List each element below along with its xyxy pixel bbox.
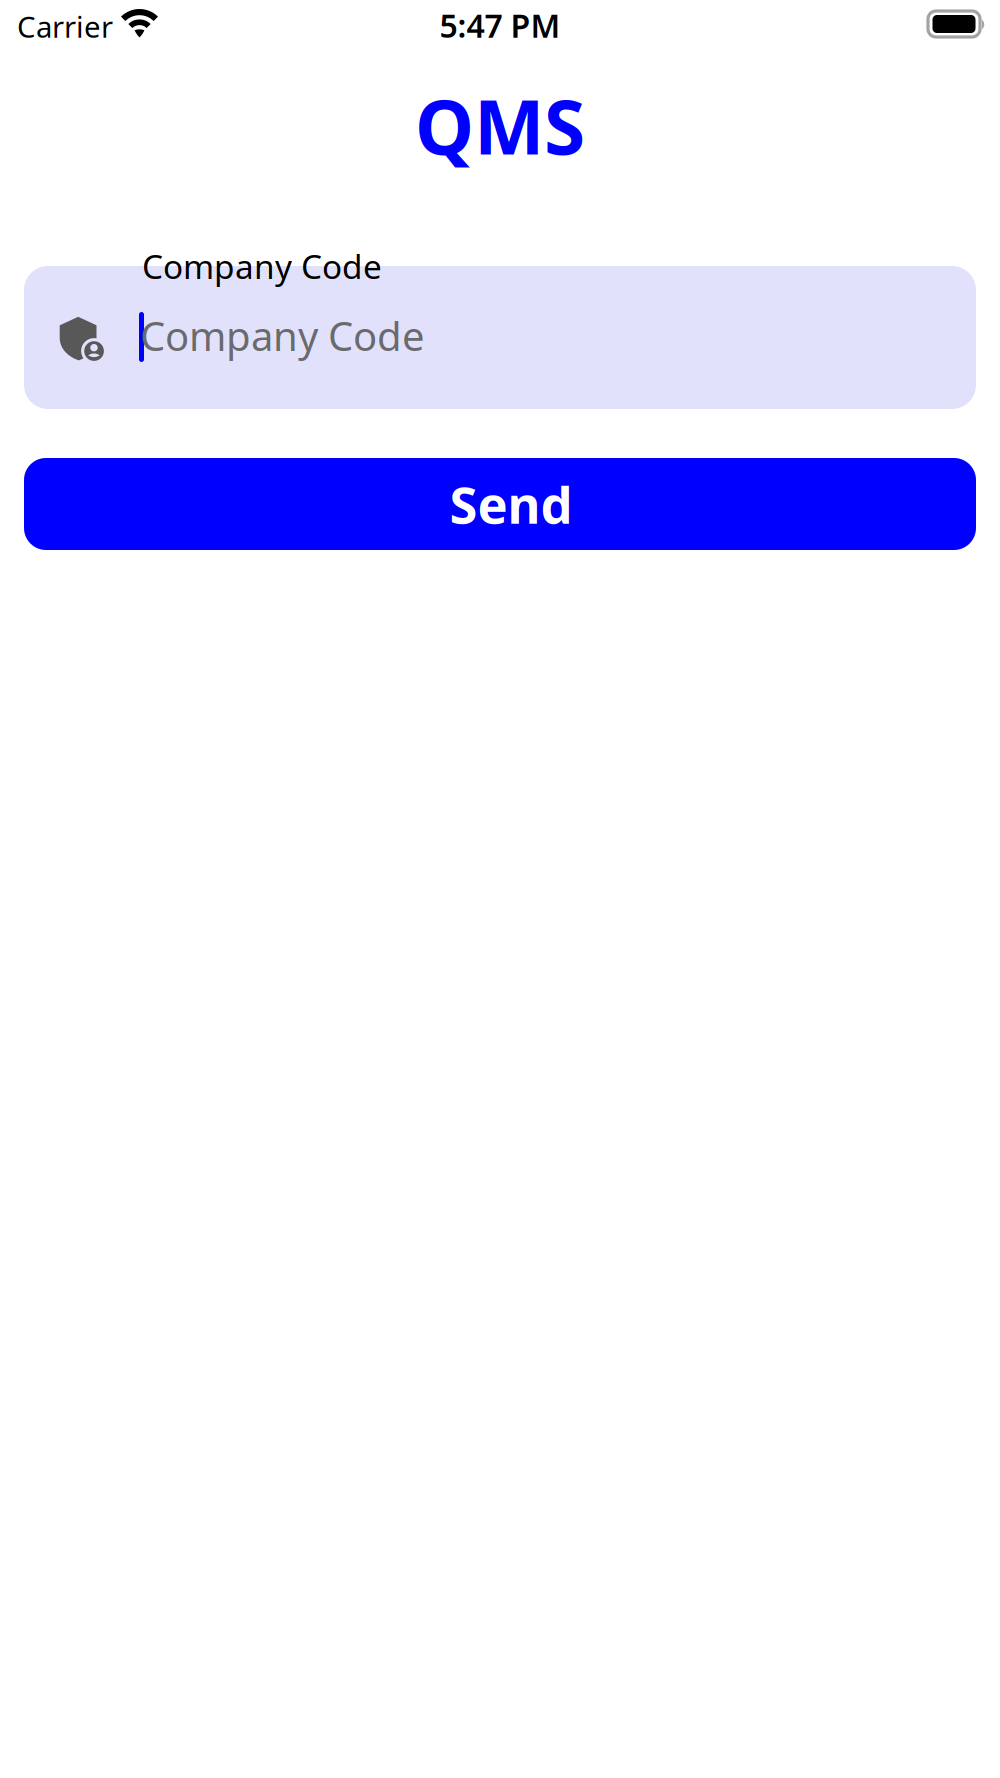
button[interactable]: Company Code [24,266,976,409]
staticText: Send [449,470,572,538]
staticText: Carrier [17,7,113,46]
staticText: Company Code [140,309,425,362]
button[interactable]: Send [24,458,976,550]
staticText: 5:47 PM [439,4,560,46]
staticText: QMS [415,76,585,175]
staticText: Company Code [142,244,382,288]
